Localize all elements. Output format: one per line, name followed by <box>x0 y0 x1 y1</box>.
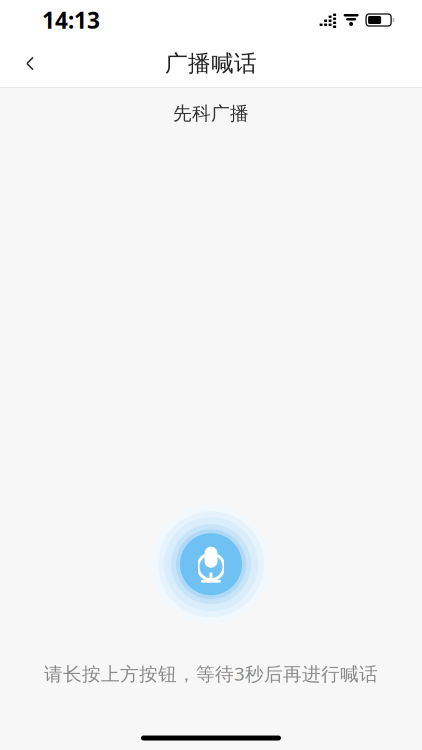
button[interactable]: Push to talk <box>136 503 286 625</box>
staticText: 请长按上方按钮，等待3秒后再进行喊话 <box>44 661 378 686</box>
staticText: 广播喊话 <box>165 50 257 77</box>
staticText: 先科广播 <box>173 102 249 125</box>
staticText: 14:13 <box>42 5 100 35</box>
button[interactable]: Back <box>6 40 54 86</box>
